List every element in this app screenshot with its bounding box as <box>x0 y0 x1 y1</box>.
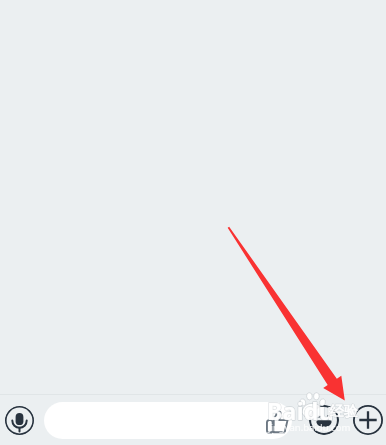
button[interactable]: More options <box>353 405 383 435</box>
staticText: 经验 <box>330 403 358 421</box>
staticText: 经验 <box>330 403 358 421</box>
staticText: Baidu <box>267 395 334 426</box>
staticText: jingyan.baidu.com <box>268 421 351 434</box>
button[interactable]: Voice message <box>5 406 34 435</box>
button[interactable]: Emoji <box>309 405 339 435</box>
staticText: Baidu <box>267 395 334 426</box>
button[interactable]: Like <box>44 402 292 439</box>
button[interactable]: Like <box>264 409 288 433</box>
